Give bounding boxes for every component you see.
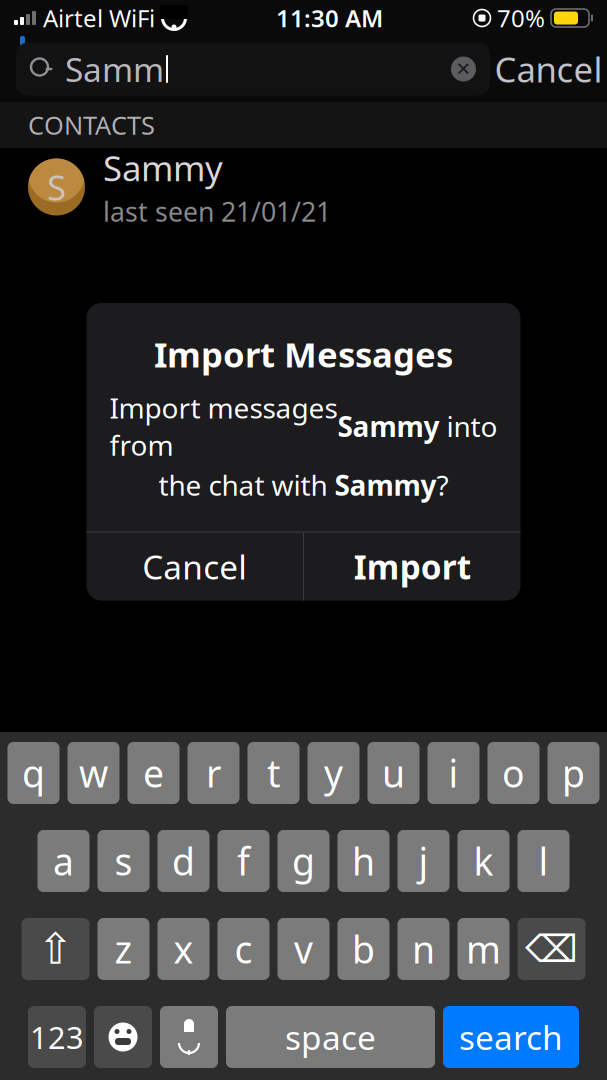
button[interactable]: t (247, 742, 299, 804)
button[interactable]: e (127, 742, 179, 804)
button[interactable]: n (397, 918, 449, 980)
staticText: CONTACTS (28, 108, 155, 142)
button[interactable]: c (217, 918, 269, 980)
staticText: i (448, 748, 458, 798)
staticText: h (352, 836, 375, 886)
staticText: k (473, 836, 493, 886)
button[interactable]: Backspace (517, 918, 585, 980)
staticText: e (143, 748, 164, 798)
staticText: ? (436, 466, 448, 504)
staticText: q (22, 748, 45, 798)
staticText: Import (354, 544, 471, 589)
button[interactable]: x (157, 918, 209, 980)
staticText: Sammy (103, 145, 223, 191)
button[interactable]: r (187, 742, 239, 804)
staticText: n (412, 924, 435, 974)
staticText: ✕ (455, 58, 471, 80)
button[interactable]: s (97, 830, 149, 892)
staticText: c (234, 924, 252, 974)
staticText: search (459, 1015, 563, 1059)
button[interactable]: k (457, 830, 509, 892)
staticText: into (439, 408, 497, 445)
button[interactable]: v (277, 918, 329, 980)
staticText: Sammy (334, 466, 436, 504)
staticText: s (114, 836, 132, 886)
button[interactable]: p (547, 742, 599, 804)
button[interactable]: S (0, 148, 607, 226)
button[interactable]: g (277, 830, 329, 892)
button[interactable]: Import (304, 533, 520, 601)
staticText: v (294, 924, 313, 974)
button[interactable]: q (7, 742, 59, 804)
button[interactable]: Cancel (86, 533, 303, 601)
staticText: a (53, 836, 74, 886)
staticText: last seen 21/01/21 (103, 194, 331, 229)
staticText: space (285, 1015, 376, 1059)
button[interactable]: w (67, 742, 119, 804)
staticText: p (562, 748, 585, 798)
staticText: Samm (65, 47, 164, 91)
button[interactable]: d (157, 830, 209, 892)
staticText: 70% (497, 2, 545, 34)
staticText: r (206, 748, 221, 798)
button[interactable]: u (367, 742, 419, 804)
staticText: z (114, 924, 132, 974)
staticText: x (173, 924, 193, 974)
button[interactable]: Cancel (490, 42, 607, 95)
staticText: Cancel (142, 544, 247, 589)
button[interactable]: 123 (28, 1006, 86, 1068)
button[interactable]: m (457, 918, 509, 980)
staticText: m (466, 924, 501, 974)
button[interactable]: a (37, 830, 89, 892)
staticText: Airtel WiFi (43, 2, 155, 34)
staticText: w (79, 748, 108, 798)
button[interactable]: i (427, 742, 479, 804)
staticText: Cancel (494, 46, 602, 92)
button[interactable]: Emoji keyboard (94, 1006, 152, 1068)
button[interactable]: y (307, 742, 359, 804)
staticText: j (418, 836, 428, 886)
button[interactable]: f (217, 830, 269, 892)
staticText: 123 (30, 1017, 84, 1057)
staticText: o (502, 748, 525, 798)
staticText: Import messages from (109, 389, 337, 463)
staticText: d (172, 836, 195, 886)
button[interactable]: search (443, 1006, 579, 1068)
button[interactable]: j (397, 830, 449, 892)
button[interactable]: h (337, 830, 389, 892)
staticText: t (267, 748, 280, 798)
button[interactable]: space (226, 1006, 435, 1068)
button[interactable]: b (337, 918, 389, 980)
staticText: ⌫ (525, 928, 578, 970)
staticText: Import Messages (154, 331, 453, 377)
button[interactable]: Dictation (160, 1006, 218, 1068)
button[interactable]: o (487, 742, 539, 804)
staticText: g (292, 836, 315, 886)
staticText: 11:30 AM (276, 2, 383, 34)
button[interactable]: l (517, 830, 569, 892)
button[interactable]: Clear search text (451, 56, 476, 81)
staticText: l (538, 836, 548, 886)
staticText: u (382, 748, 405, 798)
button[interactable]: z (97, 918, 149, 980)
staticText: the chat with (158, 466, 334, 504)
staticText: S (47, 164, 66, 210)
staticText: f (237, 836, 250, 886)
staticText: y (324, 748, 343, 798)
button[interactable]: Shift (21, 918, 89, 980)
staticText: ⇧ (37, 925, 73, 973)
staticText: b (352, 924, 375, 974)
staticText: Sammy (337, 408, 439, 445)
